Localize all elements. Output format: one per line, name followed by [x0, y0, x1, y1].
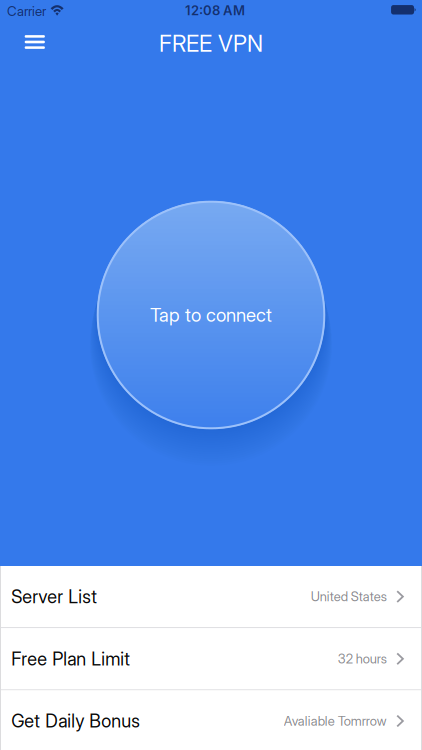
button[interactable]: Tap to connect	[97, 201, 325, 429]
staticText: 12:08 AM	[185, 3, 245, 18]
staticText: Free Plan Limit	[11, 648, 130, 670]
staticText: Tap to connect	[150, 304, 272, 326]
staticText: Server List	[11, 586, 97, 607]
staticText: Avaliable Tomrrow	[284, 713, 387, 729]
button[interactable]: Menu	[12, 21, 58, 65]
staticText: 32 hours	[338, 651, 387, 667]
staticText: FREE VPN	[159, 30, 263, 57]
staticText: Carrier	[7, 3, 46, 19]
staticText: Get Daily Bonus	[11, 710, 140, 732]
staticText: United States	[311, 589, 387, 604]
button[interactable]: Server List	[0, 566, 422, 627]
button[interactable]: Free Plan Limit	[0, 628, 422, 689]
button[interactable]: Get Daily Bonus	[0, 690, 422, 750]
